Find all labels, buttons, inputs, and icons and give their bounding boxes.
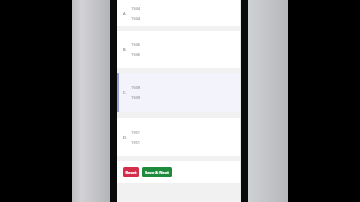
staticText: A. <box>123 11 127 16</box>
button[interactable]: B. <box>117 31 241 68</box>
staticText: 1946 <box>131 42 141 47</box>
staticText: 1946 <box>131 52 141 57</box>
staticText: 1951 <box>131 130 141 135</box>
staticText: C. <box>123 90 127 95</box>
staticText: Save & Next <box>145 170 169 175</box>
button[interactable]: C. <box>117 73 241 112</box>
staticText: B. <box>123 47 127 52</box>
staticText: 1944 <box>131 6 141 11</box>
staticText: D. <box>123 135 127 140</box>
staticText: 1951 <box>131 140 141 145</box>
button[interactable]: D. <box>117 118 241 156</box>
staticText: 1949 <box>131 85 141 90</box>
staticText: 1949 <box>131 95 141 100</box>
button[interactable]: Save & Next <box>142 167 172 177</box>
button[interactable]: Reset <box>123 167 139 177</box>
button[interactable]: A. <box>117 0 241 26</box>
staticText: Reset <box>125 170 137 175</box>
staticText: 1944 <box>131 16 141 21</box>
